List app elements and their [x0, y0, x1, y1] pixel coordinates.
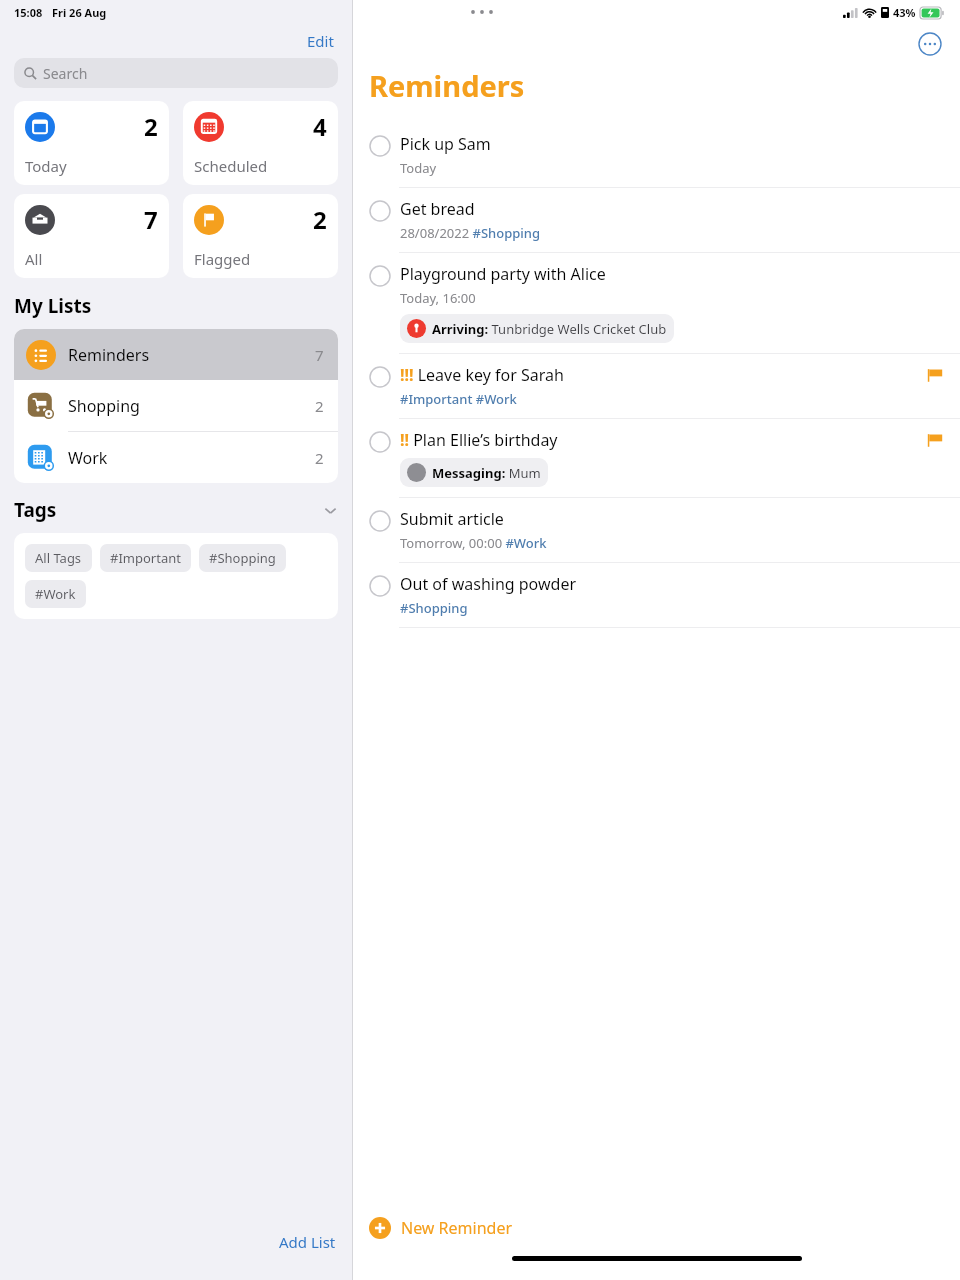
staticText: Arriving: Tunbridge Wells Cricket Club: [432, 320, 667, 338]
staticText: Pick up Sam: [400, 133, 491, 155]
staticText: Get bread: [400, 198, 475, 220]
staticText: Search: [43, 64, 88, 83]
staticText: 2: [313, 203, 327, 236]
staticText: 2: [144, 110, 158, 143]
staticText: 43%: [893, 5, 916, 20]
button[interactable]: Edit: [0, 24, 352, 58]
button[interactable]: #Important: [100, 544, 191, 572]
button[interactable]: Reminders: [14, 329, 338, 380]
staticText: All Tags: [35, 549, 82, 567]
button[interactable]: Tags: [14, 497, 338, 523]
button[interactable]: New Reminder: [353, 1200, 960, 1256]
staticText: Today, 16:00: [400, 289, 476, 307]
staticText: 2: [315, 396, 324, 416]
staticText: Reminders: [68, 344, 150, 366]
staticText: My Lists: [14, 293, 92, 319]
staticText: New Reminder: [401, 1217, 513, 1239]
staticText: !! Plan Ellie’s birthday: [400, 429, 558, 451]
staticText: Out of washing powder: [400, 573, 577, 595]
staticText: 4: [313, 110, 327, 143]
staticText: 28/08/2022 #Shopping: [400, 224, 541, 242]
staticText: Playground party with Alice: [400, 263, 606, 285]
button[interactable]: 2: [183, 194, 338, 278]
staticText: Scheduled: [194, 156, 268, 176]
staticText: 7: [144, 203, 158, 236]
button[interactable]: 4: [183, 101, 338, 185]
staticText: Shopping: [68, 395, 140, 417]
button[interactable]: Playground party with Alice: [353, 253, 960, 353]
staticText: 7: [315, 345, 324, 365]
button[interactable]: Add List: [0, 1220, 352, 1280]
staticText: Edit: [307, 31, 334, 51]
button[interactable]: Messaging: Mum: [400, 458, 548, 487]
button[interactable]: 2: [14, 101, 169, 185]
staticText: Fri 26 Aug: [52, 5, 107, 20]
button[interactable]: #Work: [25, 580, 86, 608]
button[interactable]: All Tags: [25, 544, 92, 572]
staticText: #Work: [35, 585, 76, 603]
button[interactable]: Search: [14, 58, 338, 88]
staticText: #Important #Work: [400, 390, 517, 408]
button[interactable]: !! Plan Ellie’s birthday: [353, 419, 960, 497]
staticText: Reminders: [369, 66, 525, 105]
staticText: #Shopping: [209, 549, 276, 567]
staticText: Add List: [279, 1232, 336, 1252]
staticText: Tags: [14, 497, 57, 523]
button[interactable]: Out of washing powder: [353, 563, 960, 627]
button[interactable]: Shopping: [14, 380, 338, 431]
staticText: Submit article: [400, 508, 504, 530]
button[interactable]: Work: [14, 432, 338, 483]
staticText: Flagged: [194, 249, 251, 269]
staticText: Tomorrow, 00:00 #Work: [400, 534, 547, 552]
staticText: Today: [25, 156, 67, 176]
staticText: !!! Leave key for Sarah: [400, 364, 564, 386]
staticText: #Important: [110, 549, 181, 567]
staticText: 2: [315, 448, 324, 468]
button[interactable]: Pick up Sam: [353, 123, 960, 187]
button[interactable]: 7: [14, 194, 169, 278]
staticText: All: [25, 249, 43, 269]
staticText: Today: [400, 159, 437, 177]
button[interactable]: !!! Leave key for Sarah: [353, 354, 960, 418]
staticText: Work: [68, 447, 108, 469]
staticText: #Shopping: [400, 599, 468, 617]
button[interactable]: Get bread: [353, 188, 960, 252]
button[interactable]: Arriving: Tunbridge Wells Cricket Club: [400, 314, 674, 343]
button[interactable]: #Shopping: [199, 544, 286, 572]
staticText: 15:08: [14, 5, 43, 20]
staticText: Messaging: Mum: [432, 464, 541, 482]
button[interactable]: Submit article: [353, 498, 960, 562]
button[interactable]: More options: [918, 32, 942, 56]
